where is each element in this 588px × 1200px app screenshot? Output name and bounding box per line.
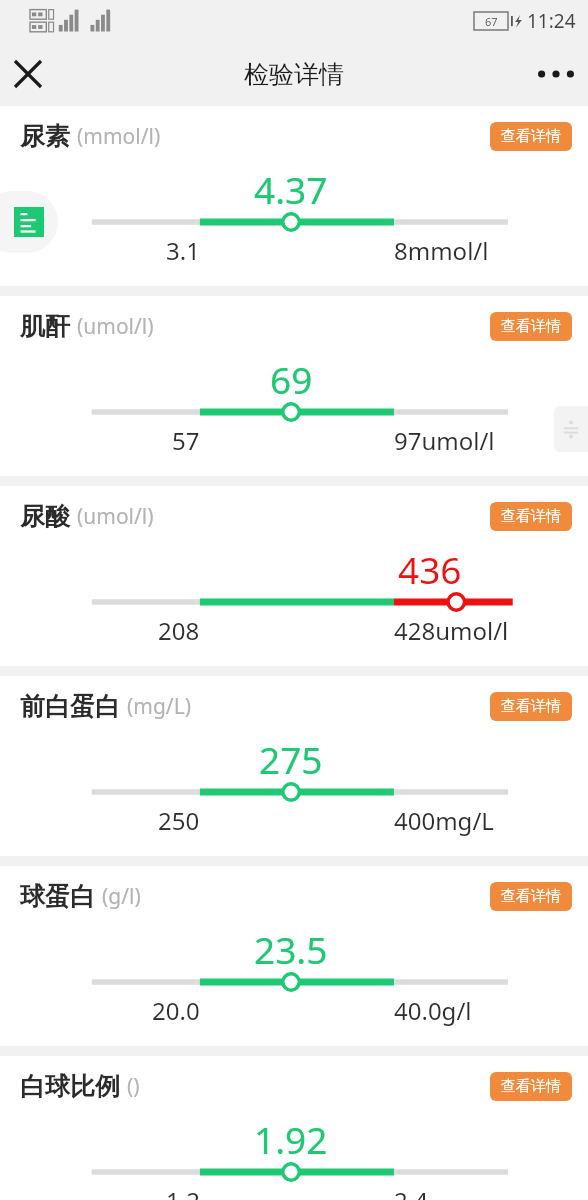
staticText: 4.37 (254, 164, 328, 214)
staticText: 400mg/L (394, 804, 494, 837)
staticText: 2.4 (394, 1184, 428, 1200)
staticText: 20.0 (152, 994, 200, 1027)
staticText: (umol/l) (77, 312, 154, 341)
staticText: 3.1 (166, 234, 200, 267)
staticText: 40.0g/l (394, 994, 472, 1027)
button[interactable]: 尿酸 (0, 486, 588, 666)
staticText: 查看详情 (501, 697, 561, 716)
staticText: 436 (398, 544, 462, 594)
staticText: 428umol/l (394, 614, 509, 647)
staticText: 208 (158, 614, 200, 647)
staticText: 275 (259, 734, 323, 784)
button[interactable]: 肌酐 (0, 296, 588, 476)
staticText: 1.92 (254, 1114, 328, 1164)
staticText: 前白蛋白 (20, 691, 120, 722)
staticText: 1.2 (166, 1184, 200, 1200)
staticText: 查看详情 (501, 507, 561, 526)
staticText: 69 (270, 354, 313, 404)
staticText: 肌酐 (20, 311, 70, 342)
button[interactable]: 查看详情 (490, 692, 572, 721)
button[interactable]: 尿素 (0, 106, 588, 286)
staticText: 查看详情 (501, 887, 561, 906)
staticText: 查看详情 (501, 1077, 561, 1096)
staticText: 白球比例 (20, 1071, 120, 1102)
button[interactable]: 球蛋白 (0, 866, 588, 1046)
staticText: 11:24 (527, 8, 576, 34)
staticText: 250 (158, 804, 200, 837)
staticText: 查看详情 (501, 127, 561, 146)
staticText: 尿素 (20, 121, 70, 152)
staticText: () (127, 1072, 140, 1101)
button[interactable]: 关闭 (0, 46, 56, 102)
button[interactable]: 查看详情 (490, 502, 572, 531)
staticText: 球蛋白 (20, 881, 95, 912)
staticText: (mmol/l) (77, 122, 161, 151)
staticText: 尿酸 (20, 501, 70, 532)
staticText: 97umol/l (394, 424, 495, 457)
button[interactable]: 白球比例 (0, 1056, 588, 1200)
button[interactable]: 查看详情 (490, 122, 572, 151)
staticText: 检验详情 (244, 59, 344, 90)
staticText: 57 (172, 424, 200, 457)
button[interactable]: 前白蛋白 (0, 676, 588, 856)
button[interactable]: 查看详情 (490, 882, 572, 911)
staticText: 8mmol/l (394, 234, 489, 267)
button[interactable]: 报告列表 (0, 191, 58, 253)
button[interactable]: 更多 (524, 42, 588, 106)
staticText: (umol/l) (77, 502, 154, 531)
staticText: (g/l) (102, 882, 141, 911)
staticText: 23.5 (254, 924, 328, 974)
staticText: 查看详情 (501, 317, 561, 336)
button[interactable]: 查看详情 (490, 312, 572, 341)
staticText: 67 (485, 14, 498, 29)
staticText: (mg/L) (127, 692, 191, 721)
button[interactable]: 悬浮工具 (554, 406, 588, 452)
button[interactable]: 查看详情 (490, 1072, 572, 1101)
